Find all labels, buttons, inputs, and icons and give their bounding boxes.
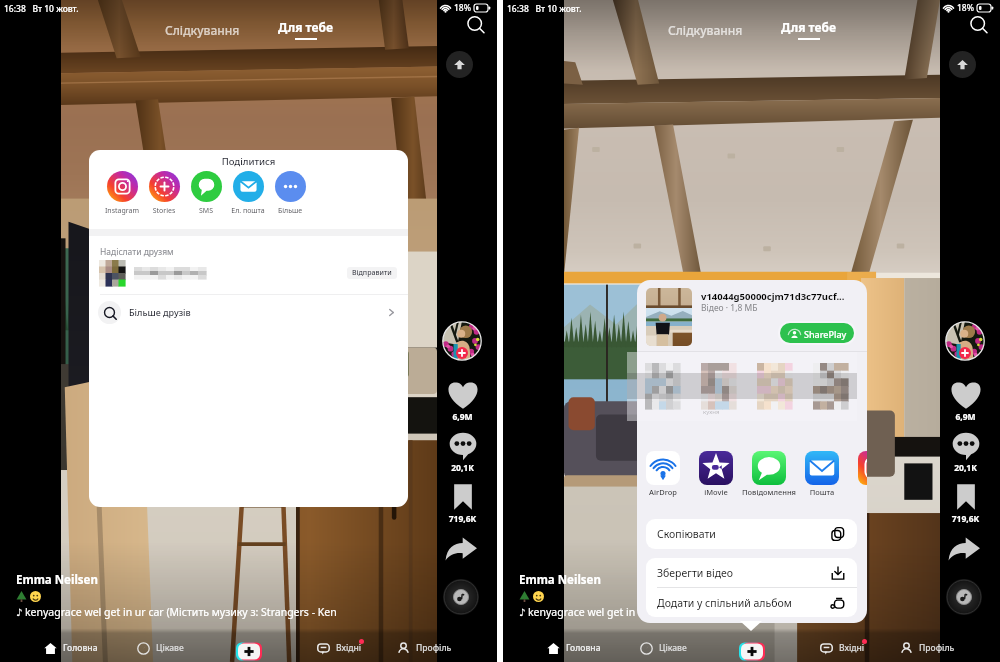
button[interactable]: Share (444, 532, 478, 566)
button[interactable]: Music (946, 579, 982, 615)
staticText: Ел. пошта (227, 206, 269, 216)
button[interactable]: Для тебе (270, 15, 341, 44)
staticText: 6,9M (942, 411, 989, 423)
staticText: Emma Neilsen (16, 572, 98, 588)
button[interactable]: Зберегти відео (657, 558, 846, 587)
button[interactable]: Search (463, 12, 489, 38)
staticText: Цікаве (659, 642, 687, 654)
staticText: SMS (185, 206, 227, 216)
button[interactable]: Ins (858, 451, 867, 497)
button[interactable]: Відправити (99, 258, 397, 288)
button[interactable]: Profile (945, 321, 985, 361)
staticText: 20,1K (942, 462, 989, 474)
button[interactable]: Create (236, 642, 262, 661)
staticText: Головна (63, 642, 98, 654)
button[interactable]: Upload (446, 51, 473, 78)
staticText: kenyagrace wel get in ur car (Містить му… (528, 605, 840, 619)
staticText: Більше (269, 206, 311, 216)
button[interactable]: Bookmark (439, 482, 486, 525)
staticText: Слідкування (668, 22, 743, 38)
staticText: ♪ (16, 605, 25, 619)
staticText: iMovie (690, 487, 742, 497)
staticText: 18% (454, 2, 471, 14)
staticText: v14044g50000cjm71d3c77ucf... (701, 290, 845, 303)
button[interactable]: Create (739, 642, 765, 661)
staticText: AirDrop (637, 487, 689, 497)
staticText: кухня (703, 408, 720, 416)
button[interactable]: Додати у спільний альбом (657, 588, 846, 617)
staticText: 20,1K (439, 462, 486, 474)
staticText: Вхідні (839, 642, 865, 654)
staticText: SharePlay (804, 328, 847, 340)
staticText: Stories (143, 206, 185, 216)
button[interactable]: Profile (442, 321, 482, 361)
staticText: Пошта (796, 487, 848, 497)
button[interactable]: Search (966, 12, 992, 38)
staticText: Поділитися (89, 155, 408, 168)
button[interactable]: Більше друзів (98, 296, 397, 328)
button[interactable]: iMovie (690, 451, 742, 497)
button[interactable]: Вхідні (820, 634, 869, 662)
button[interactable]: Відправити (347, 267, 397, 279)
button[interactable]: Music (443, 579, 479, 615)
staticText: Додати у спільний альбом (657, 596, 792, 610)
staticText: Відправити (352, 268, 392, 278)
button[interactable]: Instagram (101, 171, 143, 216)
button[interactable]: Stories (143, 171, 185, 216)
button[interactable]: Share (947, 532, 981, 566)
staticText: Instagram (101, 206, 143, 216)
button[interactable]: Повідомлення (732, 451, 806, 497)
button[interactable]: Upload (949, 51, 976, 78)
staticText: Головна (566, 642, 601, 654)
button[interactable]: Цікаве (640, 634, 691, 662)
button[interactable]: SMS (185, 171, 227, 216)
button[interactable]: Головна (547, 634, 605, 662)
staticText: Скопіювати (657, 527, 716, 541)
button[interactable]: Для тебе (773, 15, 844, 44)
button[interactable]: Bookmark (942, 482, 989, 525)
button[interactable]: AirDrop (637, 451, 689, 497)
staticText: Відео · 1,8 МБ (701, 302, 758, 314)
staticText: Emma Neilsen (519, 572, 601, 588)
staticText: Для тебе (278, 19, 333, 35)
staticText: 16:38 Вт 10 жовт. (507, 3, 582, 15)
staticText: Для тебе (781, 19, 836, 35)
staticText: Профіль (919, 642, 955, 654)
button[interactable]: Ел. пошта (227, 171, 269, 216)
button[interactable]: Скопіювати (657, 519, 846, 549)
button[interactable]: Comments (439, 431, 486, 474)
button[interactable]: Вхідні (317, 634, 366, 662)
staticText: Повідомлення (732, 487, 806, 497)
button[interactable]: Профіль (397, 634, 456, 662)
staticText: 16:38 Вт 10 жовт. (4, 3, 79, 15)
staticText: kenyagrace wel get in ur car (Містить му… (25, 605, 337, 619)
button[interactable]: Пошта (796, 451, 848, 497)
button[interactable]: Слідкування (660, 18, 751, 42)
staticText: Профіль (416, 642, 452, 654)
button[interactable]: Більше (269, 171, 311, 216)
staticText: Надіслати друзям (100, 246, 174, 258)
button[interactable]: Comments (942, 431, 989, 474)
staticText: 719,6K (439, 513, 486, 525)
staticText: 18% (957, 2, 974, 14)
staticText: ♪ (519, 605, 528, 619)
staticText: Вхідні (336, 642, 362, 654)
staticText: Слідкування (165, 22, 240, 38)
staticText: Більше друзів (129, 306, 191, 318)
staticText: Цікаве (156, 642, 184, 654)
staticText: 719,6K (942, 513, 989, 525)
button[interactable]: Профіль (900, 634, 959, 662)
button[interactable]: Цікаве (137, 634, 188, 662)
button[interactable]: Слідкування (157, 18, 248, 42)
button[interactable]: Like (942, 380, 989, 423)
staticText: Зберегти відео (657, 566, 734, 580)
button[interactable]: Головна (44, 634, 102, 662)
button[interactable]: Like (439, 380, 486, 423)
staticText: 6,9M (439, 411, 486, 423)
button[interactable]: SharePlay (780, 323, 854, 343)
